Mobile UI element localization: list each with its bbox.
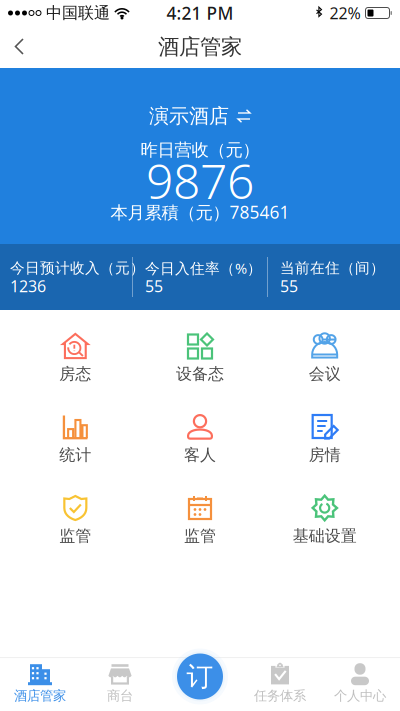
staticText: 昨日营收（元） — [140, 139, 259, 161]
staticText: 1236 — [10, 275, 46, 297]
staticText: 酒店管家 — [14, 687, 66, 704]
button[interactable]: 会议 — [262, 332, 387, 413]
button[interactable]: 订 — [172, 648, 228, 704]
staticText: 客人 — [184, 445, 216, 465]
staticText: 中国联通 — [46, 3, 110, 23]
button[interactable]: 商台 — [80, 659, 160, 708]
staticText: 演示酒店 — [149, 104, 229, 128]
staticText: 房情 — [309, 445, 341, 465]
button[interactable]: Back — [0, 28, 39, 66]
staticText: 订 — [186, 660, 213, 693]
staticText: 55 — [280, 275, 298, 297]
staticText: 酒店管家 — [158, 34, 242, 60]
staticText: 个人中心 — [334, 687, 386, 704]
staticText: 22% — [329, 2, 360, 24]
button[interactable]: 客人 — [138, 413, 262, 494]
staticText: 任务体系 — [254, 687, 306, 704]
button[interactable]: 房情 — [262, 413, 387, 494]
staticText: 设备态 — [176, 364, 224, 384]
staticText: 监管 — [184, 526, 216, 546]
staticText: 商台 — [107, 687, 133, 704]
staticText: 今日预计收入（元） — [10, 259, 145, 277]
button[interactable]: 任务体系 — [240, 659, 320, 708]
button[interactable]: 基础设置 — [262, 494, 387, 575]
button[interactable]: 演示酒店 — [143, 107, 257, 125]
button[interactable]: 个人中心 — [320, 659, 400, 708]
staticText: 今日入住率（%） — [145, 258, 262, 278]
staticText: 监管 — [59, 526, 91, 546]
button[interactable]: 房态 — [13, 332, 138, 413]
button[interactable]: 监管 — [138, 494, 262, 575]
button[interactable]: 设备态 — [138, 332, 262, 413]
staticText: 房态 — [59, 364, 91, 384]
staticText: 本月累積（元）785461 — [110, 200, 289, 223]
staticText: 会议 — [309, 364, 341, 384]
staticText: 统计 — [59, 445, 91, 465]
button[interactable]: 监管 — [13, 494, 138, 575]
staticText: 当前在住（间） — [280, 259, 385, 277]
staticText: 基础设置 — [293, 526, 357, 546]
button[interactable]: 酒店管家 — [0, 659, 80, 708]
button[interactable]: 统计 — [13, 413, 138, 494]
staticText: 4:21 PM — [166, 1, 233, 24]
staticText: 9876 — [146, 149, 254, 212]
staticText: 55 — [145, 275, 163, 297]
